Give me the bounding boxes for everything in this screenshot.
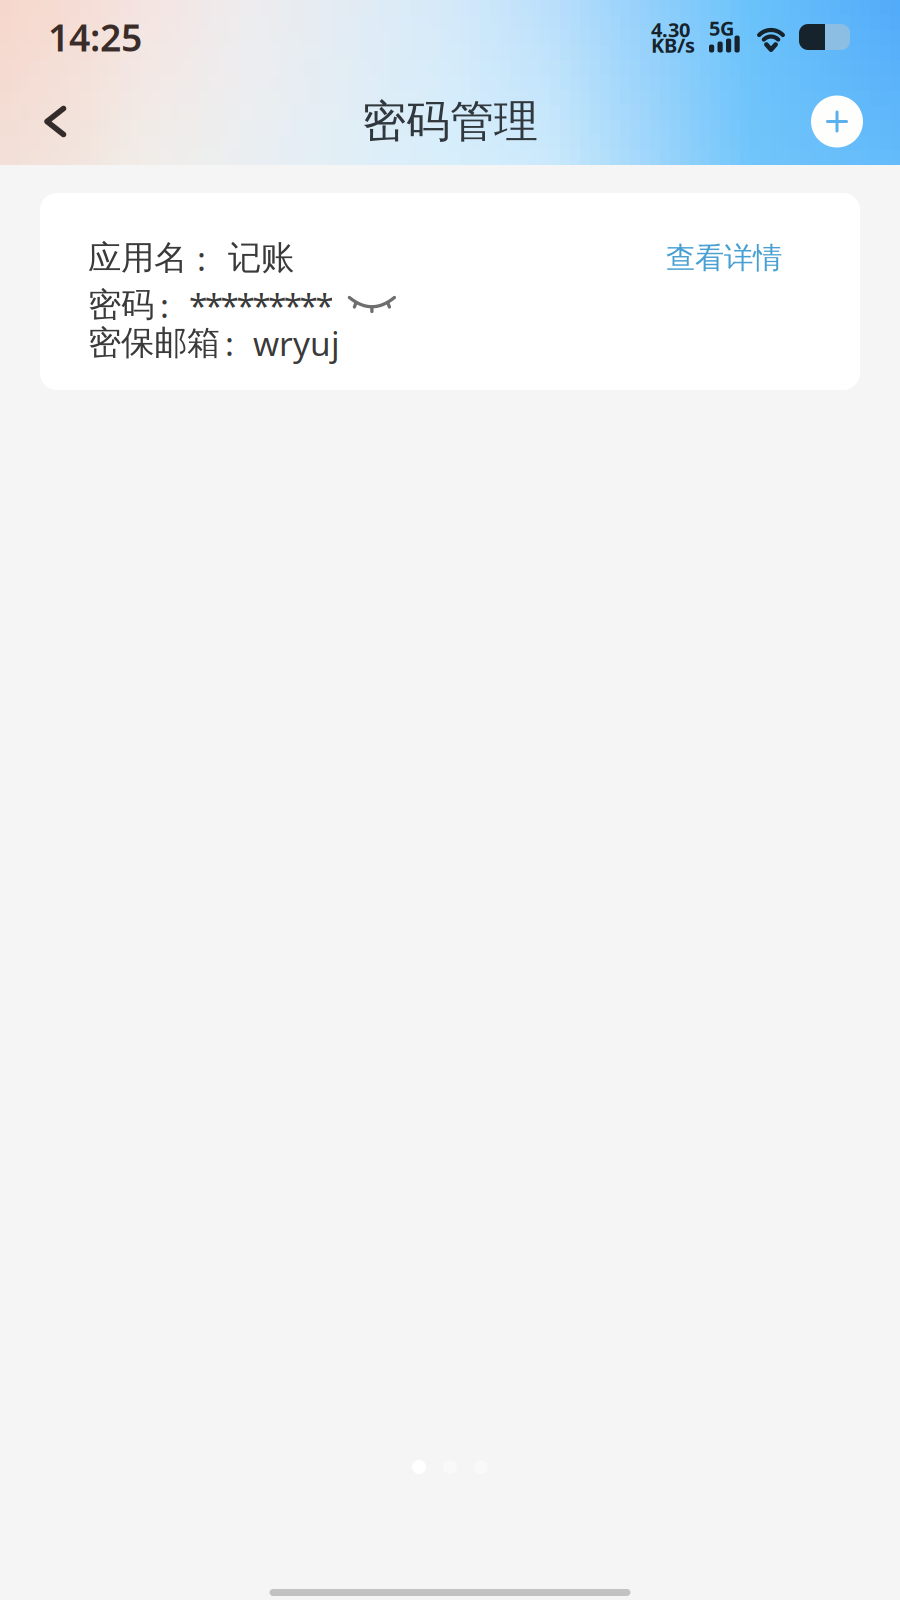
button[interactable]: 应用名 — [40, 193, 860, 390]
staticText: 14:25 — [48, 12, 142, 62]
staticText: 密码 — [88, 284, 154, 325]
staticText: wryuj — [253, 321, 340, 365]
staticText: : — [225, 321, 234, 365]
staticText: 密码管理 — [362, 94, 538, 148]
staticText: 查看详情 — [666, 240, 782, 276]
button[interactable]: Show password — [333, 286, 396, 324]
button[interactable]: Add password — [800, 78, 874, 165]
staticText: 记账 — [228, 237, 294, 278]
staticText: 密保邮箱 — [88, 322, 220, 363]
staticText: 4.30 — [651, 16, 690, 43]
button[interactable]: 查看详情 — [666, 239, 782, 277]
staticText: : — [197, 236, 206, 280]
staticText: 应用名 — [88, 237, 187, 278]
staticText: 5G — [709, 15, 734, 41]
staticText: KB/s — [651, 32, 695, 58]
staticText: : — [160, 283, 169, 327]
button[interactable]: Back — [22, 78, 88, 165]
staticText: ********* — [189, 283, 333, 327]
